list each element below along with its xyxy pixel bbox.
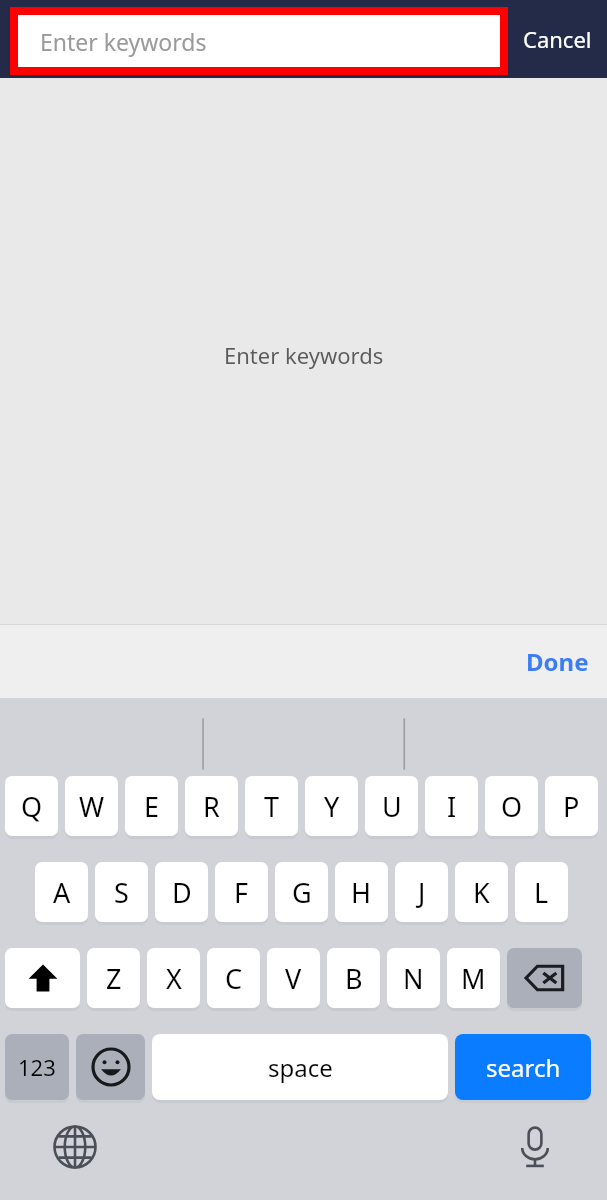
- staticText: Enter keywords: [40, 26, 207, 57]
- staticText: search: [486, 1051, 561, 1084]
- staticText: N: [403, 960, 424, 997]
- staticText: J: [418, 874, 426, 911]
- button[interactable]: G: [275, 862, 328, 922]
- button[interactable]: F: [215, 862, 268, 922]
- staticText: H: [351, 874, 372, 911]
- staticText: P: [563, 788, 580, 825]
- button[interactable]: V: [267, 948, 320, 1008]
- button[interactable]: P: [545, 776, 598, 836]
- button[interactable]: W: [65, 776, 118, 836]
- button[interactable]: H: [335, 862, 388, 922]
- staticText: A: [53, 874, 71, 911]
- button[interactable]: R: [185, 776, 238, 836]
- button[interactable]: search: [455, 1034, 591, 1100]
- staticText: E: [144, 788, 160, 825]
- button[interactable]: Dictation: [500, 1112, 570, 1182]
- button[interactable]: Z: [87, 948, 140, 1008]
- button[interactable]: Q: [5, 776, 58, 836]
- staticText: K: [473, 874, 490, 911]
- button[interactable]: Y: [305, 776, 358, 836]
- button[interactable]: C: [207, 948, 260, 1008]
- button[interactable]: I: [425, 776, 478, 836]
- staticText: Q: [21, 788, 43, 825]
- button[interactable]: Cancel: [508, 0, 607, 78]
- button[interactable]: space: [152, 1034, 448, 1100]
- staticText: M: [461, 960, 486, 997]
- staticText: I: [447, 788, 457, 825]
- button[interactable]: N: [387, 948, 440, 1008]
- button[interactable]: O: [485, 776, 538, 836]
- staticText: 123: [18, 1052, 56, 1082]
- staticText: space: [268, 1051, 333, 1084]
- button[interactable]: J: [395, 862, 448, 922]
- staticText: G: [292, 874, 312, 911]
- button[interactable]: Change keyboard language: [40, 1112, 110, 1182]
- staticText: T: [264, 788, 280, 825]
- button[interactable]: M: [447, 948, 500, 1008]
- button[interactable]: Enter keywords: [18, 15, 500, 67]
- staticText: W: [79, 788, 105, 825]
- staticText: Cancel: [523, 24, 592, 54]
- button[interactable]: D: [155, 862, 208, 922]
- button[interactable]: A: [35, 862, 88, 922]
- button[interactable]: T: [245, 776, 298, 836]
- button[interactable]: X: [147, 948, 200, 1008]
- button[interactable]: S: [95, 862, 148, 922]
- button[interactable]: U: [365, 776, 418, 836]
- staticText: X: [166, 960, 182, 997]
- button[interactable]: B: [327, 948, 380, 1008]
- staticText: R: [203, 788, 220, 825]
- staticText: O: [501, 788, 523, 825]
- button[interactable]: Done: [526, 625, 589, 698]
- staticText: S: [114, 874, 129, 911]
- staticText: D: [172, 874, 192, 911]
- staticText: U: [382, 788, 402, 825]
- button[interactable]: K: [455, 862, 508, 922]
- button[interactable]: L: [515, 862, 568, 922]
- staticText: Z: [106, 960, 122, 997]
- button[interactable]: 123: [5, 1034, 69, 1100]
- staticText: C: [225, 960, 243, 997]
- staticText: B: [345, 960, 363, 997]
- staticText: F: [234, 874, 249, 911]
- staticText: Enter keywords: [224, 340, 384, 370]
- button[interactable]: E: [125, 776, 178, 836]
- staticText: V: [285, 960, 302, 997]
- staticText: Done: [526, 645, 589, 678]
- button[interactable]: Backspace: [507, 948, 582, 1008]
- staticText: L: [534, 874, 549, 911]
- button[interactable]: Emoji: [76, 1034, 145, 1100]
- button[interactable]: Shift: [5, 948, 80, 1008]
- staticText: Y: [324, 788, 340, 825]
